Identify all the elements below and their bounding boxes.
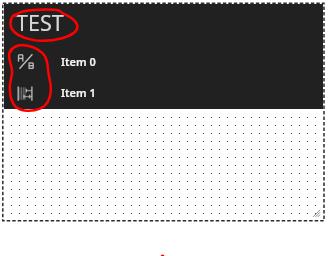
button[interactable]: A / B test	[4, 46, 323, 77]
staticText: Item 1	[61, 85, 96, 100]
other: A / B test	[18, 52, 35, 69]
staticText: Item 0	[61, 54, 96, 69]
other: Abacus	[18, 85, 35, 102]
staticText: TEST	[16, 8, 64, 37]
button[interactable]: Abacus	[4, 77, 323, 108]
